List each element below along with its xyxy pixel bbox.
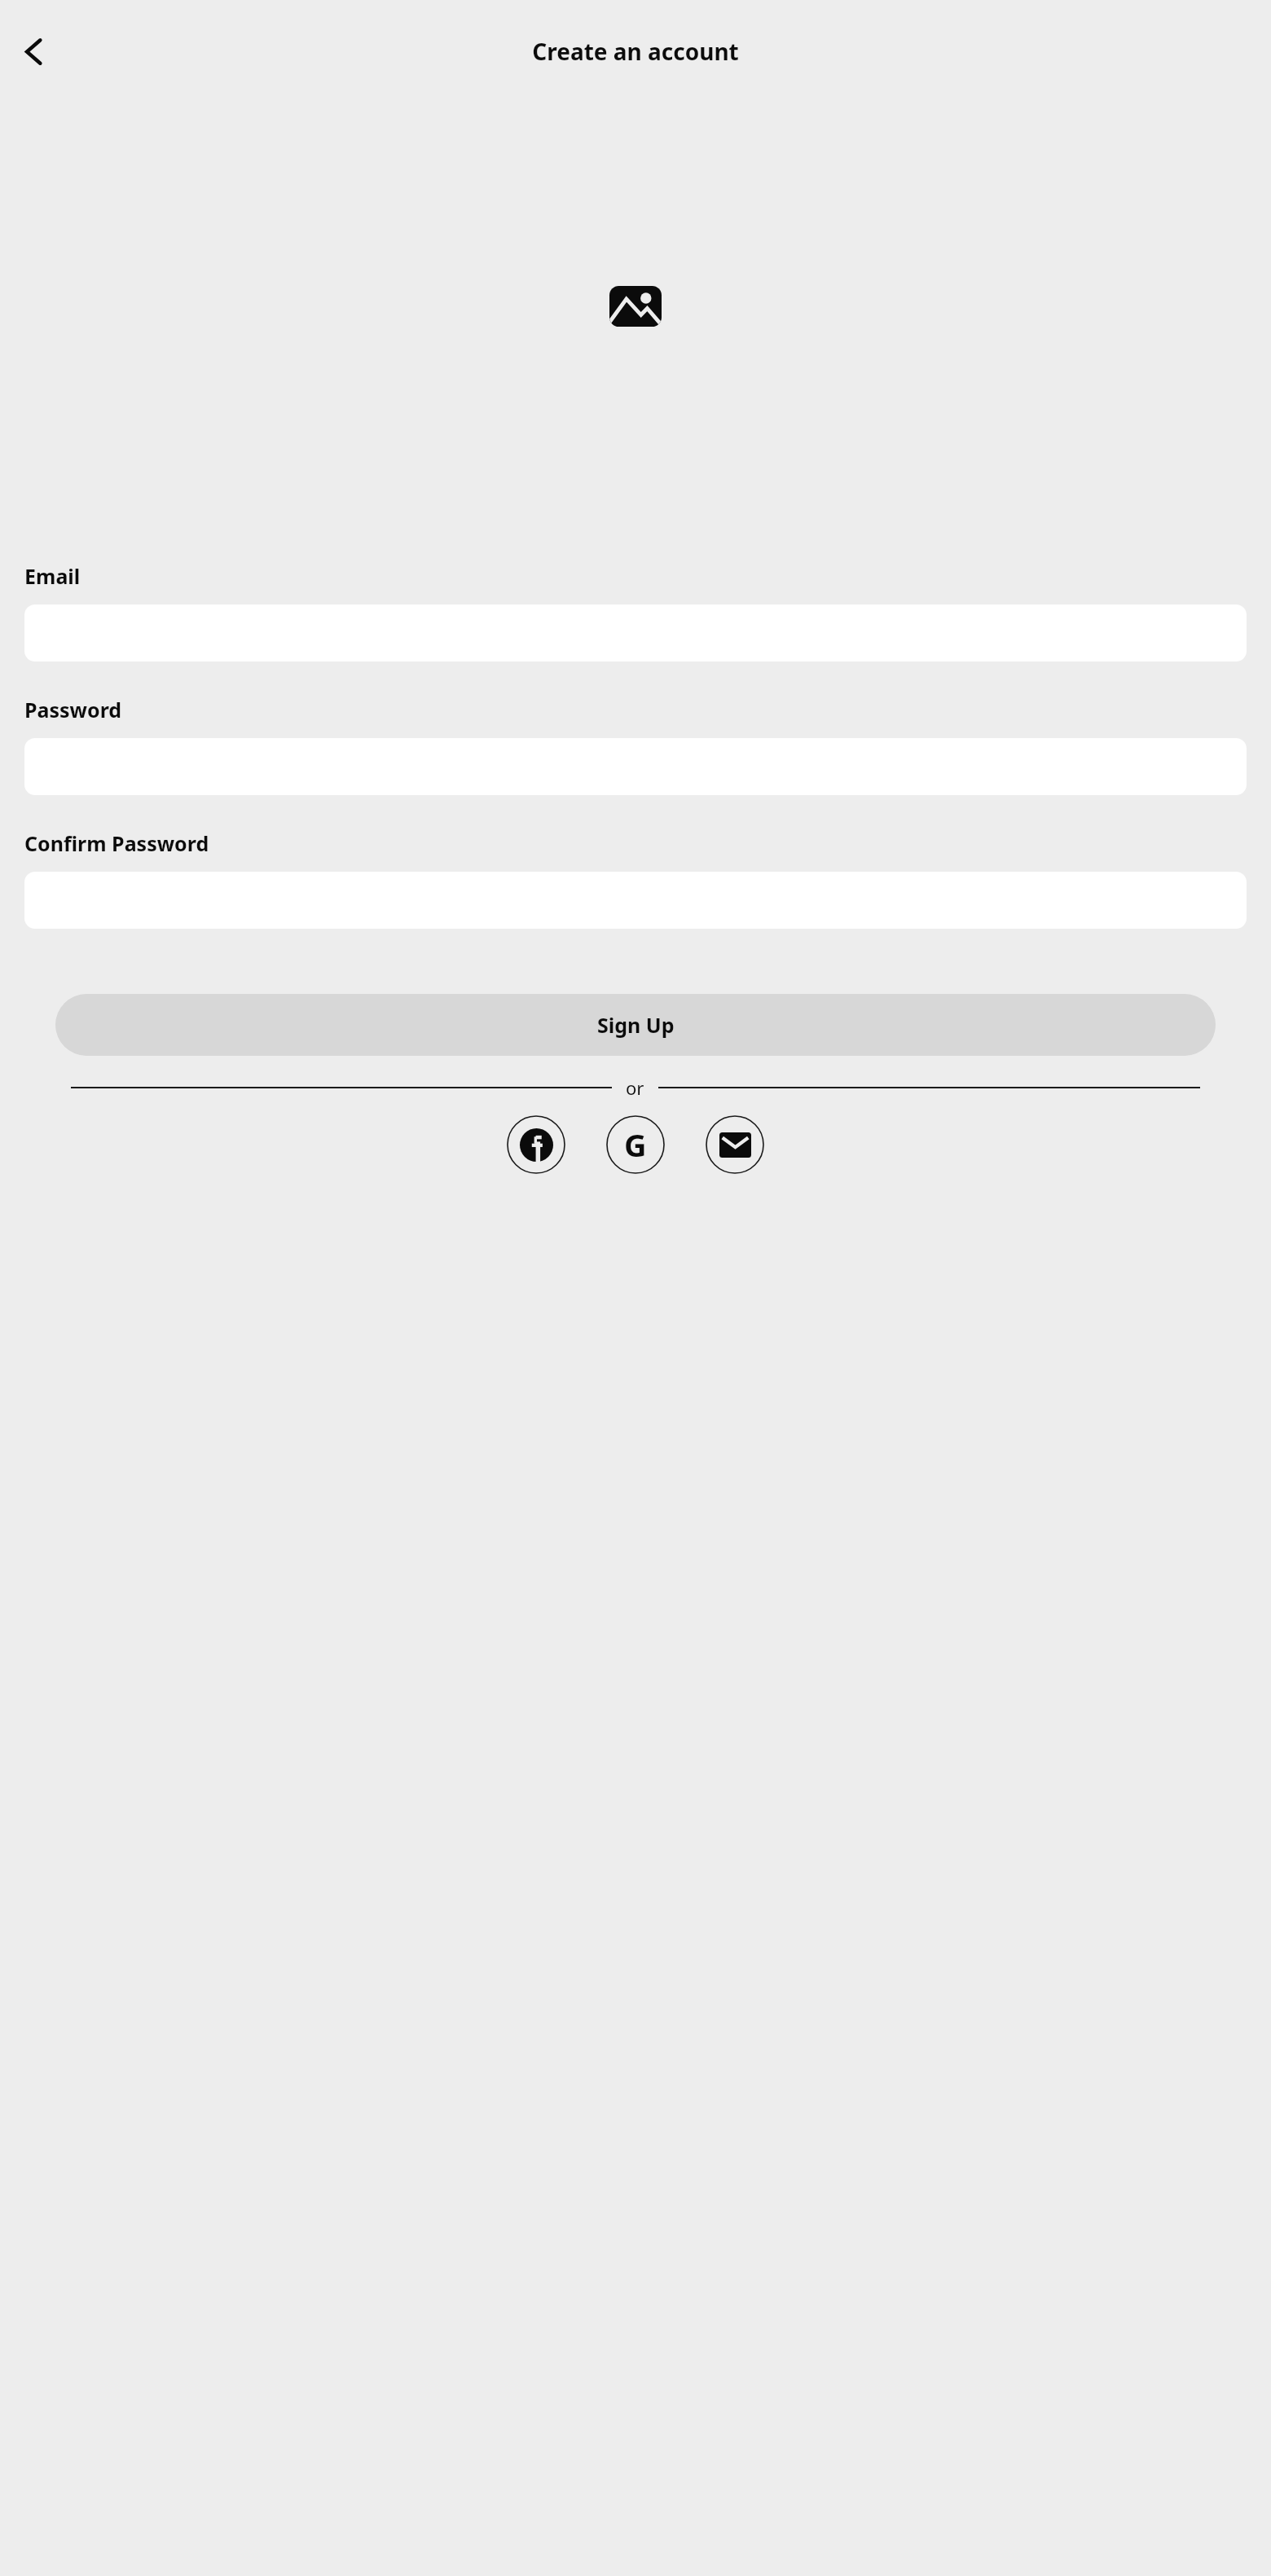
staticText: G [624, 1123, 647, 1166]
staticText: Sign Up [597, 1011, 675, 1039]
staticText: Email [24, 562, 81, 590]
button[interactable]: Sign up with Email [706, 1115, 764, 1174]
button[interactable]: Sign up with Google [606, 1115, 665, 1174]
staticText: Password [24, 696, 122, 723]
staticText: or [626, 1075, 644, 1100]
button[interactable]: Back [11, 29, 56, 74]
button[interactable]: Sign Up [55, 994, 1216, 1056]
staticText: Confirm Password [24, 829, 209, 857]
staticText: Create an account [532, 36, 739, 67]
button[interactable]: Sign up with Facebook [507, 1115, 565, 1174]
